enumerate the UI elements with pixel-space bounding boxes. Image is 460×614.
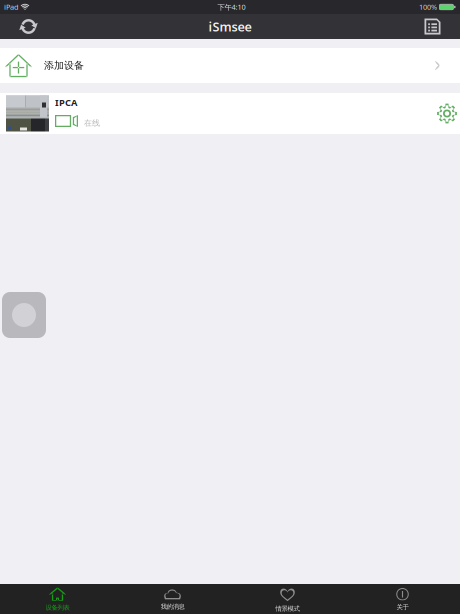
button[interactable]: IPCA bbox=[0, 93, 460, 134]
staticText: 设备列表 bbox=[45, 603, 69, 612]
staticText: iSmsee bbox=[208, 18, 251, 35]
staticText: 情景模式 bbox=[275, 604, 299, 613]
button[interactable]: Camera settings bbox=[434, 93, 460, 134]
staticText: 添加设备 bbox=[44, 59, 84, 72]
staticText: 在线 bbox=[84, 118, 100, 128]
button[interactable]: Device log bbox=[405, 14, 460, 39]
staticText: IPCA bbox=[55, 96, 77, 109]
button[interactable]: 设备列表 bbox=[0, 584, 115, 614]
staticText: 我的消息 bbox=[160, 602, 184, 611]
button[interactable]: 情景模式 bbox=[230, 584, 345, 614]
button[interactable]: 关于 bbox=[345, 584, 460, 614]
button[interactable]: Refresh bbox=[0, 14, 57, 39]
staticText: 100% bbox=[419, 2, 437, 12]
button[interactable]: 我的消息 bbox=[115, 584, 230, 614]
staticText: 下午4:10 bbox=[217, 2, 245, 12]
button[interactable]: 添加设备 bbox=[0, 48, 460, 83]
staticText: 关于 bbox=[396, 603, 408, 611]
staticText: iPad bbox=[4, 2, 19, 12]
